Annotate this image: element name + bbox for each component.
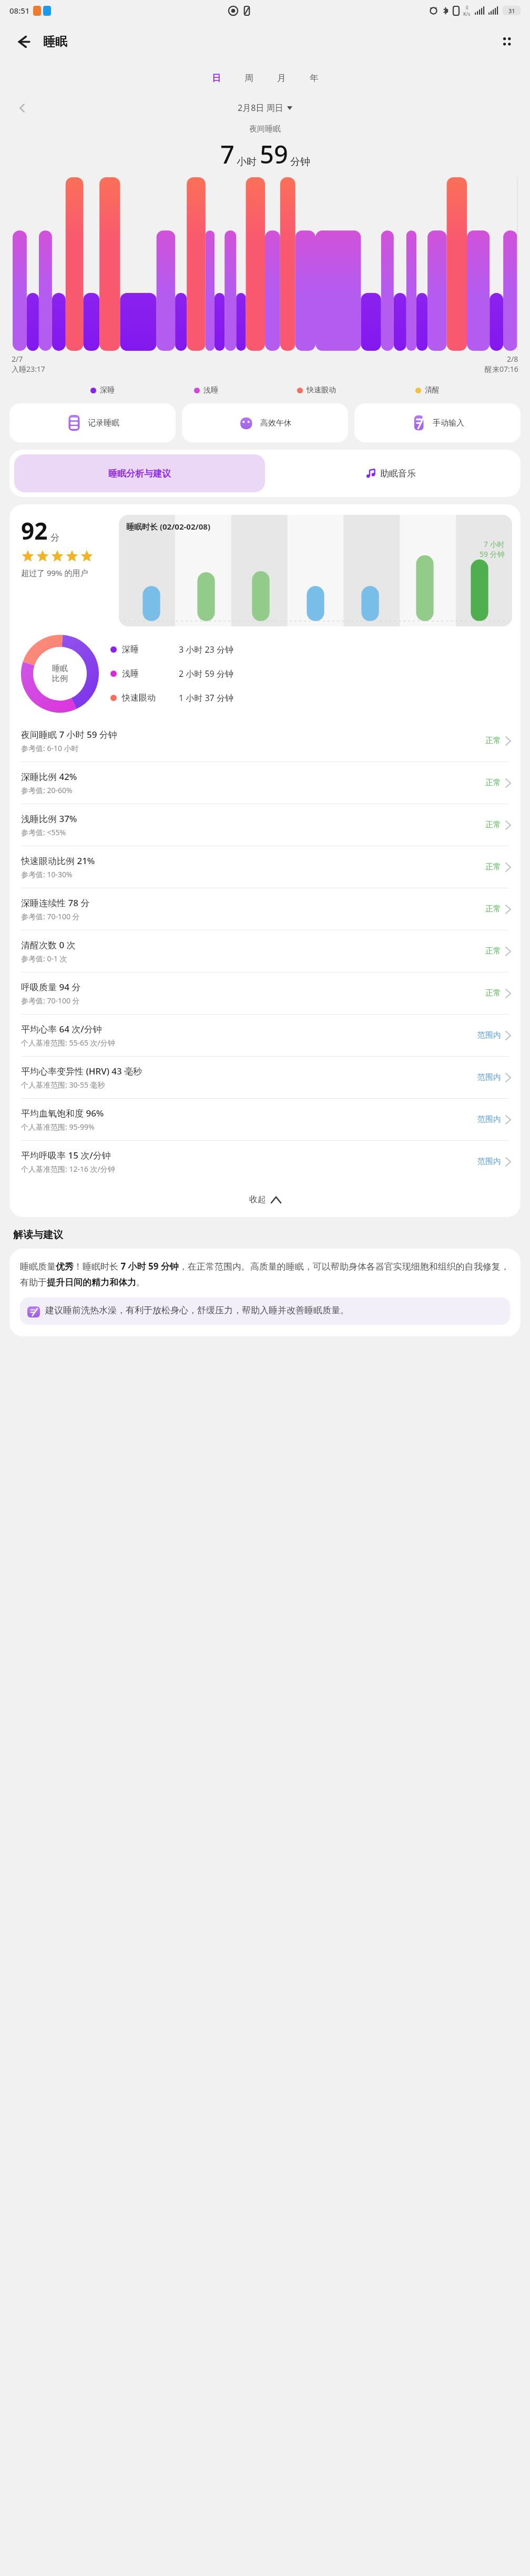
staticText: 平均心率 64 次/分钟 — [21, 1023, 102, 1035]
staticText: 59 分钟 — [480, 549, 505, 559]
button[interactable]: 平均呼吸率 15 次/分钟 — [9, 1141, 521, 1182]
staticText: 睡眠质量优秀！睡眠时长 7 小时 59 分钟，在正常范围内。高质量的睡眠，可以帮… — [20, 1260, 510, 1288]
staticText: 正常 — [485, 946, 501, 956]
staticText: 范围内 — [477, 1114, 501, 1124]
button[interactable]: 清醒次数 0 次 — [9, 930, 521, 972]
button[interactable]: 夜间睡眠 7 小时 59 分钟 — [9, 720, 521, 762]
staticText: 7 — [220, 137, 235, 171]
staticText: 睡眠分析与建议 — [108, 468, 171, 479]
staticText: 平均心率变异性 (HRV) 43 毫秒 — [21, 1065, 142, 1077]
staticText: 夜间睡眠 — [0, 124, 530, 134]
staticText: 睡眠 — [52, 664, 68, 674]
staticText: 超过了 99% 的用户 — [21, 567, 88, 578]
staticText: 解读与建议 — [13, 1229, 63, 1241]
staticText: 周 — [244, 73, 253, 84]
button[interactable]: 平均心率变异性 (HRV) 43 毫秒 — [9, 1057, 521, 1098]
staticText: 浅睡 — [203, 386, 218, 395]
button[interactable]: 平均血氧饱和度 96% — [9, 1099, 521, 1140]
staticText: 清醒 — [425, 386, 440, 395]
button[interactable]: 2月8日 周日 — [238, 102, 292, 114]
staticText: 正常 — [485, 988, 501, 998]
button[interactable]: 日 — [200, 66, 232, 89]
button[interactable]: More options — [493, 28, 521, 55]
staticText: 深睡连续性 78 分 — [21, 897, 90, 909]
staticText: 7 小时 — [484, 539, 505, 549]
button[interactable]: Previous day — [12, 97, 33, 118]
button[interactable]: 深睡比例 42% — [9, 762, 521, 804]
button[interactable]: 记录睡眠 — [9, 403, 176, 442]
staticText: 助眠音乐 — [380, 468, 416, 479]
button[interactable]: 月 — [265, 66, 298, 89]
staticText: 快速眼动 — [307, 386, 336, 395]
staticText: 快速眼动比例 21% — [21, 855, 95, 867]
staticText: 高效午休 — [260, 418, 292, 428]
staticText: 睡眠时长 (02/02-02/08) — [126, 521, 210, 532]
staticText: 2 小时 59 分钟 — [179, 668, 233, 680]
staticText: 深睡 — [122, 644, 179, 655]
staticText: 59 — [260, 137, 288, 171]
staticText: 参考值: 6-10 小时 — [21, 743, 79, 753]
staticText: 参考值: 0-1 次 — [21, 954, 67, 964]
staticText: 正常 — [485, 820, 501, 830]
staticText: 深睡 — [100, 386, 115, 395]
staticText: 正常 — [485, 904, 501, 914]
staticText: 范围内 — [477, 1157, 501, 1167]
staticText: 3 小时 23 分钟 — [179, 644, 233, 655]
staticText: 个人基准范围: 95-99% — [21, 1122, 95, 1132]
staticText: 范围内 — [477, 1030, 501, 1040]
button[interactable]: Back — [9, 28, 37, 55]
staticText: 参考值: 10-30% — [21, 869, 73, 879]
staticText: 手动输入 — [433, 418, 464, 428]
staticText: 2月8日 周日 — [238, 102, 283, 114]
staticText: 平均血氧饱和度 96% — [21, 1107, 104, 1119]
button[interactable]: 周 — [232, 66, 265, 89]
button[interactable]: 助眠音乐 — [265, 454, 516, 492]
button[interactable]: 睡眠分析与建议 — [14, 454, 265, 492]
staticText: 正常 — [485, 778, 501, 788]
button[interactable]: 快速眼动比例 21% — [9, 846, 521, 888]
staticText: 月 — [277, 73, 286, 84]
staticText: 平均呼吸率 15 次/分钟 — [21, 1149, 111, 1161]
staticText: 参考值: 20-60% — [21, 785, 73, 795]
staticText: 年 — [310, 73, 319, 84]
staticText: 小时 — [237, 156, 257, 168]
staticText: 1 小时 37 分钟 — [179, 692, 233, 704]
button[interactable]: 收起 — [9, 1182, 521, 1217]
staticText: K/s — [463, 11, 471, 17]
staticText: 收起 — [249, 1194, 266, 1205]
button[interactable]: 高效午休 — [182, 403, 348, 442]
button[interactable]: 深睡连续性 78 分 — [9, 888, 521, 930]
staticText: 2/8 — [507, 354, 518, 364]
button[interactable]: 手动输入 — [354, 403, 521, 442]
staticText: 分 — [50, 532, 59, 543]
staticText: 0 — [466, 5, 468, 11]
staticText: 参考值: <55% — [21, 827, 66, 837]
staticText: 浅睡 — [122, 668, 179, 679]
staticText: 92 — [21, 515, 48, 546]
staticText: 睡眠 — [43, 34, 67, 49]
staticText: 比例 — [52, 674, 68, 684]
staticText: 快速眼动 — [122, 693, 179, 703]
staticText: 正常 — [485, 736, 501, 746]
staticText: 呼吸质量 94 分 — [21, 981, 81, 993]
staticText: 深睡比例 42% — [21, 770, 77, 783]
staticText: 参考值: 70-100 分 — [21, 911, 80, 921]
staticText: 入睡23:17 — [12, 364, 45, 374]
staticText: 日 — [212, 73, 221, 84]
staticText: 个人基准范围: 12-16 次/分钟 — [21, 1164, 115, 1174]
staticText: 建议睡前洗热水澡，有利于放松身心，舒缓压力，帮助入睡并改善睡眠质量。 — [45, 1305, 349, 1316]
button[interactable]: 呼吸质量 94 分 — [9, 972, 521, 1014]
button[interactable]: 浅睡比例 37% — [9, 804, 521, 846]
staticText: 范围内 — [477, 1072, 501, 1082]
staticText: 31 — [508, 7, 515, 15]
button[interactable]: 年 — [298, 66, 330, 89]
staticText: 醒来07:16 — [485, 364, 518, 374]
staticText: 分钟 — [290, 156, 310, 168]
staticText: 个人基准范围: 30-55 毫秒 — [21, 1080, 105, 1090]
staticText: 清醒次数 0 次 — [21, 939, 76, 951]
button[interactable]: 平均心率 64 次/分钟 — [9, 1015, 521, 1056]
staticText: 2/7 — [12, 354, 23, 364]
staticText: 浅睡比例 37% — [21, 813, 77, 825]
staticText: 夜间睡眠 7 小时 59 分钟 — [21, 728, 117, 741]
staticText: 参考值: 70-100 分 — [21, 996, 80, 1006]
